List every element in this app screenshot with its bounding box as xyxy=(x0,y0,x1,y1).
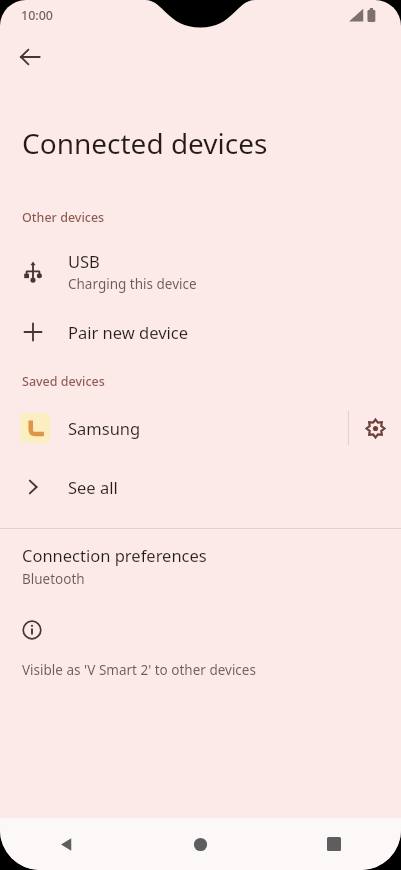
staticText: Connected devices xyxy=(22,124,268,162)
staticText: See all xyxy=(68,476,118,498)
staticText: Samsung xyxy=(68,417,141,439)
staticText: USB xyxy=(68,250,100,272)
button[interactable]: Samsung settings xyxy=(349,402,401,454)
staticText: Charging this device xyxy=(68,275,197,293)
button[interactable]: Pair new device xyxy=(0,311,401,353)
button[interactable]: Recent apps xyxy=(267,818,401,870)
button[interactable]: Back xyxy=(0,818,133,870)
button[interactable]: Samsung xyxy=(0,407,348,449)
staticText: Saved devices xyxy=(22,373,105,390)
button[interactable]: USB xyxy=(0,244,401,299)
staticText: 10:00 xyxy=(21,7,54,24)
staticText: Bluetooth xyxy=(22,570,85,588)
staticText: Other devices xyxy=(22,209,105,226)
staticText: Visible as 'V Smart 2' to other devices xyxy=(22,661,256,679)
button[interactable]: Back xyxy=(8,35,52,79)
button[interactable]: Connection preferences xyxy=(0,529,401,600)
staticText: Connection preferences xyxy=(22,544,207,566)
button[interactable]: See all xyxy=(0,466,401,508)
staticText: Pair new device xyxy=(68,321,189,343)
button[interactable]: Home xyxy=(133,818,267,870)
